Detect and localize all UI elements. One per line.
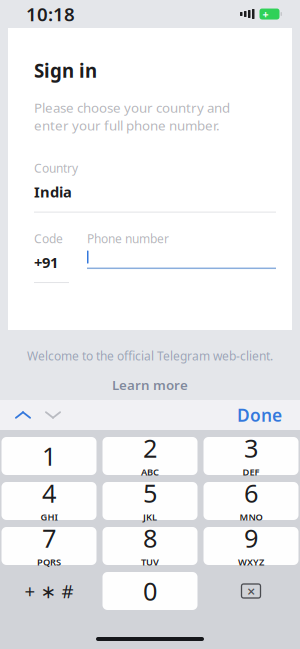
button[interactable]: 7: [1, 527, 96, 565]
staticText: PQRS: [37, 556, 61, 568]
staticText: Sign in: [34, 58, 97, 83]
staticText: 9: [244, 521, 258, 555]
button[interactable]: Delete: [203, 572, 298, 610]
staticText: 3: [244, 431, 258, 465]
button[interactable]: Previous field: [8, 401, 38, 429]
staticText: 7: [42, 521, 56, 555]
staticText: 0: [143, 574, 157, 608]
staticText: MNO: [239, 511, 262, 523]
staticText: Country: [34, 160, 78, 176]
staticText: DEF: [242, 466, 259, 478]
button[interactable]: 9: [203, 527, 298, 565]
staticText: India: [34, 182, 72, 202]
staticText: JKL: [143, 511, 157, 523]
button[interactable]: 3: [203, 437, 298, 475]
staticText: 5: [143, 476, 157, 510]
staticText: Phone number: [87, 231, 169, 246]
button[interactable]: 4: [1, 482, 96, 520]
staticText: + ∗ #: [24, 579, 73, 603]
staticText: Welcome to the official Telegram web-cli…: [27, 348, 273, 364]
staticText: ABC: [141, 466, 159, 478]
staticText: Please choose your country and enter you…: [34, 99, 230, 134]
staticText: TUV: [141, 556, 159, 568]
staticText: Done: [237, 403, 282, 426]
button[interactable]: 8: [102, 527, 197, 565]
button[interactable]: 6: [203, 482, 298, 520]
button[interactable]: 0: [102, 572, 197, 610]
staticText: WXYZ: [238, 556, 264, 568]
button[interactable]: 1: [1, 437, 96, 475]
staticText: 6: [244, 476, 258, 510]
button[interactable]: 2: [102, 437, 197, 475]
staticText: 4: [42, 476, 56, 510]
staticText: +: [262, 7, 268, 21]
button[interactable]: Next field: [38, 401, 68, 429]
staticText: 8: [143, 521, 157, 555]
button[interactable]: Done: [229, 398, 290, 431]
staticText: Code: [34, 231, 63, 246]
staticText: +91: [34, 253, 58, 272]
staticText: ×: [247, 581, 255, 601]
button[interactable]: Learn more: [104, 372, 196, 398]
staticText: Learn more: [112, 376, 188, 394]
staticText: 1: [42, 439, 56, 473]
staticText: 2: [143, 431, 157, 465]
button[interactable]: Plus, star, pound: [1, 572, 96, 610]
staticText: 10:18: [26, 2, 75, 26]
staticText: GHI: [40, 511, 57, 523]
button[interactable]: 5: [102, 482, 197, 520]
